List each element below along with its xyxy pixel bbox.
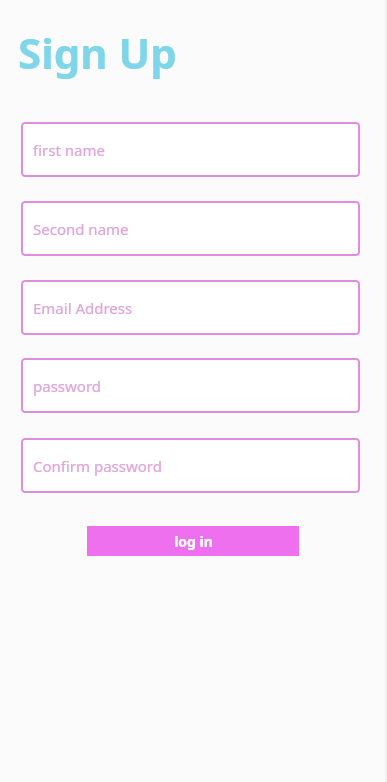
staticText: password (33, 376, 101, 396)
staticText: Email Address (33, 298, 133, 318)
staticText: log in (174, 532, 213, 551)
staticText: Sign Up (18, 24, 177, 81)
button[interactable]: first name (21, 122, 360, 177)
button[interactable]: log in (87, 526, 299, 556)
button[interactable]: Second name (21, 201, 360, 256)
staticText: Confirm password (33, 456, 162, 476)
button[interactable]: Confirm password (21, 438, 360, 493)
button[interactable]: Email Address (21, 280, 360, 335)
staticText: Second name (33, 219, 129, 239)
staticText: first name (33, 140, 105, 160)
button[interactable]: password (21, 358, 360, 413)
